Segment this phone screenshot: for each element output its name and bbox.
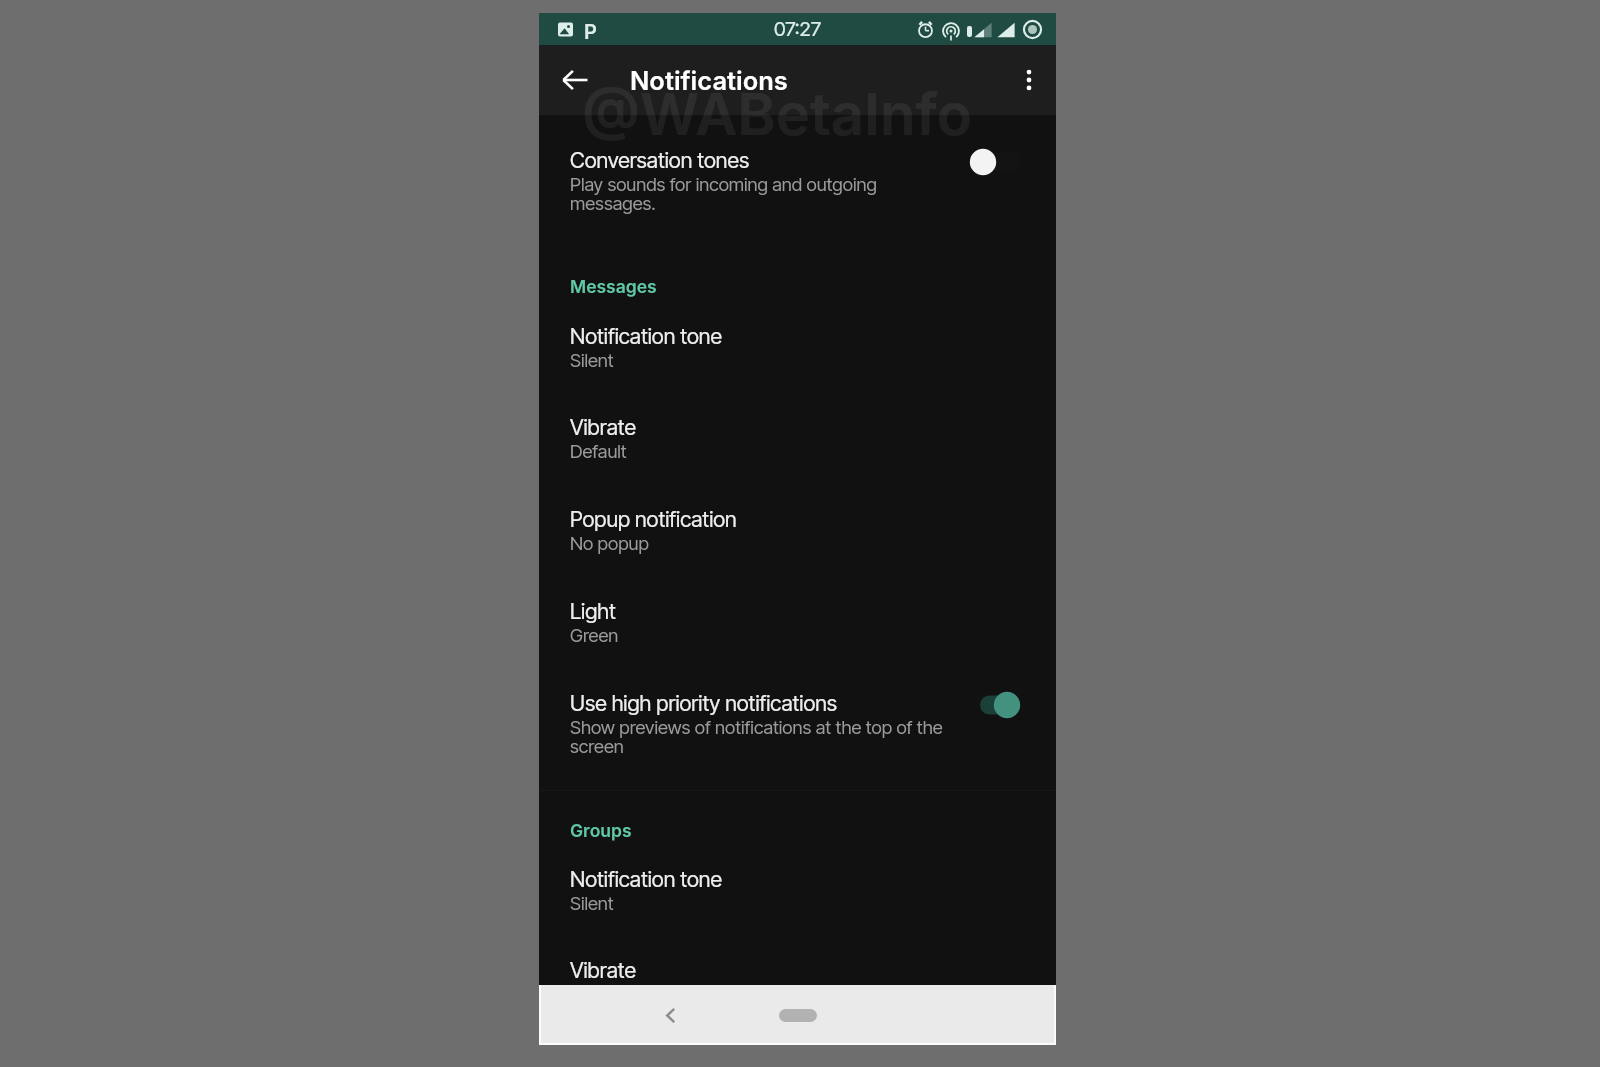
staticText: 07:27 xyxy=(774,17,822,41)
staticText: Silent xyxy=(570,892,614,914)
staticText: Play sounds for incoming and outgoing me… xyxy=(570,173,877,215)
button[interactable]: More options xyxy=(1011,62,1047,98)
staticText: Groups xyxy=(570,820,632,841)
staticText: Messages xyxy=(570,276,657,297)
staticText: Green xyxy=(570,624,619,646)
button[interactable]: Vibrate xyxy=(539,406,1056,470)
button[interactable]: Light xyxy=(539,590,1056,654)
button[interactable]: Conversation tones xyxy=(539,139,1056,223)
staticText: Notification tone xyxy=(570,323,722,349)
staticText: Notifications xyxy=(630,65,788,96)
button[interactable]: Popup notification xyxy=(539,498,1056,562)
staticText: Light xyxy=(570,598,616,624)
button[interactable]: Back xyxy=(557,62,593,98)
button[interactable]: Notification tone xyxy=(539,858,1056,922)
staticText: Vibrate xyxy=(570,957,636,983)
staticText: Popup notification xyxy=(570,506,737,532)
staticText: Default xyxy=(570,440,627,462)
staticText: Notification tone xyxy=(570,866,722,892)
button[interactable]: Notification tone xyxy=(539,315,1056,379)
staticText: @WABetaInfo xyxy=(582,79,973,149)
button[interactable]: Use high priority notifications xyxy=(539,682,1056,766)
staticText: Vibrate xyxy=(570,414,636,440)
staticText: Show previews of notifications at the to… xyxy=(570,716,943,758)
staticText: P xyxy=(584,20,597,44)
button[interactable]: Vibrate xyxy=(539,949,1056,991)
staticText: Conversation tones xyxy=(570,147,750,173)
button[interactable]: Toggle Conversation tones xyxy=(966,144,1036,180)
staticText: No popup xyxy=(570,532,649,554)
staticText: Silent xyxy=(570,349,614,371)
button[interactable]: Toggle Use high priority notifications xyxy=(966,687,1036,723)
button[interactable]: Home xyxy=(779,1009,817,1022)
button[interactable]: Back xyxy=(656,1000,686,1030)
staticText: Use high priority notifications xyxy=(570,690,838,716)
